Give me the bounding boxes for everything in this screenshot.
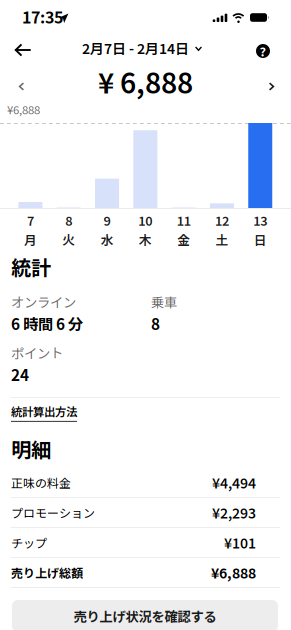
staticText: 2月7日 - 2月14日 bbox=[82, 38, 189, 58]
staticText: 6 時間 6 分 bbox=[11, 312, 83, 334]
staticText: 13 bbox=[253, 211, 267, 229]
staticText: 8 bbox=[65, 211, 72, 229]
staticText: 8 bbox=[151, 312, 160, 334]
staticText: 12 bbox=[215, 211, 229, 229]
staticText: 統計算出方法 bbox=[11, 403, 77, 419]
staticText: 木 bbox=[139, 230, 152, 249]
button[interactable]: 統計算出方法 bbox=[11, 403, 77, 422]
staticText: チップ bbox=[11, 534, 47, 551]
staticText: 9 bbox=[103, 211, 110, 229]
staticText: 明細 bbox=[11, 434, 51, 463]
staticText: 24 bbox=[11, 363, 29, 385]
staticText: 日 bbox=[254, 230, 267, 249]
button[interactable]: Help bbox=[256, 44, 270, 58]
staticText: ? bbox=[259, 42, 266, 60]
button[interactable]: Previous period bbox=[17, 81, 26, 92]
staticText: 売り上げ総額 bbox=[11, 564, 83, 581]
button[interactable]: 売り上げ状況を確認する bbox=[12, 600, 278, 630]
button[interactable]: Back bbox=[13, 42, 33, 58]
staticText: 水 bbox=[100, 230, 113, 249]
staticText: ¥101 bbox=[224, 532, 256, 553]
staticText: ¥4,494 bbox=[212, 472, 256, 493]
staticText: ¥6,888 bbox=[7, 101, 40, 117]
button[interactable]: Next period bbox=[267, 81, 276, 92]
staticText: 統計 bbox=[11, 252, 51, 281]
staticText: 月 bbox=[24, 230, 37, 249]
staticText: 正味の料金 bbox=[11, 474, 71, 491]
staticText: 金 bbox=[177, 230, 190, 249]
staticText: 7 bbox=[27, 211, 34, 229]
staticText: 火 bbox=[62, 230, 75, 249]
button[interactable]: 2月7日 - 2月14日 bbox=[82, 39, 202, 57]
staticText: ¥6,888 bbox=[211, 562, 256, 583]
staticText: ¥2,293 bbox=[212, 502, 256, 523]
staticText: プロモーション bbox=[11, 504, 95, 521]
staticText: 乗車 bbox=[151, 292, 177, 311]
staticText: ¥ 6,888 bbox=[98, 61, 193, 101]
staticText: 10 bbox=[138, 211, 152, 229]
staticText: 11 bbox=[177, 211, 191, 229]
staticText: オンライン bbox=[11, 292, 76, 311]
staticText: ポイント bbox=[11, 343, 63, 362]
staticText: 売り上げ状況を確認する bbox=[73, 606, 216, 626]
staticText: 土 bbox=[215, 230, 228, 249]
staticText: 17:35 bbox=[22, 5, 63, 28]
